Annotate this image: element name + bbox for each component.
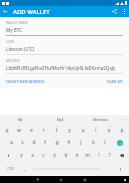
staticText: c xyxy=(42,152,45,159)
staticText: 3 xyxy=(30,124,32,127)
button[interactable]: n xyxy=(71,149,82,162)
staticText: m xyxy=(85,152,90,159)
staticText: 8 xyxy=(95,124,97,127)
button[interactable]: 9 xyxy=(102,123,115,136)
button[interactable]: Recents xyxy=(73,176,97,183)
button[interactable]: 8 xyxy=(89,123,102,136)
button[interactable]: 7 xyxy=(76,123,89,136)
button[interactable]: h xyxy=(63,136,75,149)
button[interactable]: Voice input xyxy=(113,162,128,176)
staticText: ?123 xyxy=(7,167,14,171)
staticText: q xyxy=(5,127,9,134)
button[interactable]: a xyxy=(6,136,17,149)
staticText: , xyxy=(24,166,26,173)
button[interactable]: , xyxy=(19,162,31,176)
staticText: Litecoin (LTC) xyxy=(6,46,35,52)
staticText: 2 xyxy=(18,124,20,127)
button[interactable]: d xyxy=(28,136,39,149)
button[interactable]: 1 xyxy=(1,123,13,136)
staticText: f xyxy=(44,139,46,146)
button[interactable]: b xyxy=(60,149,71,162)
staticText: a xyxy=(10,139,13,146)
button[interactable]: Meerkats xyxy=(80,115,120,123)
staticText: 4 xyxy=(43,124,45,127)
staticText: o xyxy=(107,127,111,134)
button[interactable]: z xyxy=(15,149,27,162)
staticText: l xyxy=(104,139,106,146)
button[interactable]: ?123 xyxy=(1,162,19,176)
button[interactable]: k xyxy=(87,136,99,149)
staticText: u xyxy=(81,127,85,134)
button[interactable]: Home xyxy=(49,176,73,183)
button[interactable]: My xyxy=(0,115,40,123)
button[interactable]: ! xyxy=(93,149,104,162)
staticText: My xyxy=(18,117,23,122)
staticText: p xyxy=(120,127,124,134)
button[interactable]: WALLET NAME xyxy=(6,21,123,36)
button[interactable]: ? xyxy=(104,149,115,162)
staticText: ? xyxy=(108,152,111,159)
staticText: SCAN QR xyxy=(107,79,123,84)
button[interactable]: Delete xyxy=(115,149,128,162)
staticText: x xyxy=(31,152,34,159)
staticText: e xyxy=(30,127,33,134)
button[interactable]: 4 xyxy=(37,123,50,136)
staticText: ADD WALLET xyxy=(13,8,50,16)
staticText: COIN xyxy=(6,40,14,44)
button[interactable]: CREATE NEW ADDRESS xyxy=(6,78,45,85)
staticText: 7 xyxy=(82,124,84,127)
button[interactable]: Hide keyboard xyxy=(121,176,129,183)
staticText: d xyxy=(32,139,36,146)
button[interactable]: s xyxy=(17,136,28,149)
staticText: 9 xyxy=(108,124,110,127)
button[interactable]: Expand suggestions xyxy=(120,115,129,123)
button[interactable]: ADDRESS xyxy=(6,59,123,74)
button[interactable]: More options xyxy=(120,7,129,16)
button[interactable]: 3 xyxy=(25,123,37,136)
staticText: s xyxy=(21,139,24,146)
staticText: n xyxy=(75,152,79,159)
staticText: Meerkats xyxy=(93,117,108,122)
button[interactable]: Enter xyxy=(111,136,128,149)
button[interactable]: COIN xyxy=(6,40,123,55)
button[interactable]: SCAN QR xyxy=(107,78,123,85)
button[interactable]: 6 xyxy=(63,123,76,136)
staticText: WALLET NAME xyxy=(6,21,28,25)
staticText: . xyxy=(106,166,108,173)
staticText: h xyxy=(67,139,71,146)
staticText: My BTC xyxy=(6,27,23,33)
staticText: y xyxy=(68,127,71,134)
button[interactable]: 2 xyxy=(13,123,25,136)
button[interactable]: f xyxy=(39,136,51,149)
button[interactable]: Navigate up xyxy=(0,6,11,17)
staticText: MyE xyxy=(57,117,64,122)
staticText: b xyxy=(64,152,68,159)
button[interactable]: m xyxy=(82,149,93,162)
button[interactable]: x xyxy=(27,149,38,162)
staticText: z xyxy=(20,152,23,159)
button[interactable]: j xyxy=(75,136,87,149)
staticText: r xyxy=(42,127,45,134)
button[interactable]: Shift xyxy=(1,149,15,162)
staticText: 5 xyxy=(56,124,58,127)
button[interactable]: c xyxy=(38,149,49,162)
staticText: ADDRESS xyxy=(6,59,20,63)
button[interactable]: v xyxy=(49,149,60,162)
staticText: g xyxy=(55,139,59,146)
button[interactable]: g xyxy=(51,136,63,149)
button[interactable]: 5 xyxy=(50,123,63,136)
button[interactable]: Scan QR xyxy=(109,6,120,17)
button[interactable]: 0 xyxy=(115,123,128,136)
staticText: 1 xyxy=(6,124,8,127)
button[interactable]: l xyxy=(99,136,111,149)
staticText: ! xyxy=(98,152,100,159)
button[interactable]: Back xyxy=(25,176,49,183)
staticText: t xyxy=(56,127,58,134)
staticText: w xyxy=(17,127,21,134)
staticText: v xyxy=(53,152,56,159)
staticText: i xyxy=(95,127,97,134)
button[interactable]: MyE xyxy=(40,115,80,123)
button[interactable]: Space xyxy=(31,162,101,176)
staticText: k xyxy=(92,139,95,146)
